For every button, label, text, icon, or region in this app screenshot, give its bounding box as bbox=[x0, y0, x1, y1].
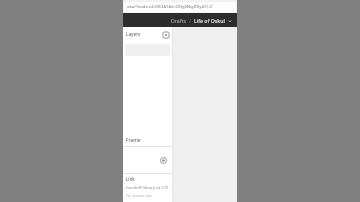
staticText: Frame bbox=[126, 137, 141, 144]
button[interactable]: Layers bbox=[123, 27, 172, 41]
button[interactable]: Link bbox=[123, 174, 172, 200]
staticText: Fit screen size bbox=[126, 193, 152, 198]
staticText: handoff library at 275 lc... bbox=[126, 185, 169, 191]
button[interactable]: Drafts bbox=[171, 17, 232, 24]
staticText: / bbox=[189, 17, 191, 24]
button[interactable]: oku/?node-id=0%3A1&t=OHg3NigfDlyz01-0 bbox=[124, 2, 236, 12]
button[interactable]: Frame bbox=[123, 135, 172, 146]
staticText: Drafts bbox=[171, 17, 186, 24]
button[interactable]: Toggle panel bbox=[162, 31, 169, 38]
other: More options bbox=[228, 19, 232, 23]
staticText: Link bbox=[126, 176, 135, 182]
staticText: Life of Oskul bbox=[194, 17, 225, 24]
button[interactable]: Component bbox=[159, 156, 167, 164]
staticText: Layers bbox=[126, 31, 141, 37]
staticText: oku/?node-id=0%3A1&t=OHg3NigfDlyz01-0 bbox=[127, 4, 212, 10]
